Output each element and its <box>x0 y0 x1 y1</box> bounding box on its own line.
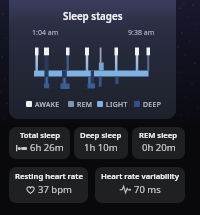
button[interactable]: Deep sleep <box>74 127 128 159</box>
button[interactable]: REM sleep <box>132 127 185 159</box>
staticText: DEEP <box>143 100 162 107</box>
staticText: 37 bpm <box>38 183 72 196</box>
button[interactable]: Resting heart rate <box>9 167 88 203</box>
staticText: LIGHT <box>106 100 128 107</box>
staticText: 0h 20m <box>142 141 176 154</box>
staticText: Total sleep <box>20 130 61 140</box>
button[interactable]: Heart rate variability <box>95 167 185 203</box>
staticText: AWAKE <box>35 100 60 107</box>
staticText: REM sleep <box>139 130 178 140</box>
button[interactable]: Sleep stages <box>9 0 176 119</box>
staticText: Resting heart rate <box>15 171 83 181</box>
staticText: Sleep stages <box>63 10 123 23</box>
staticText: Deep sleep <box>80 130 122 140</box>
staticText: 70 ms <box>134 183 161 196</box>
staticText: 1h 10m <box>84 141 118 154</box>
staticText: 9:38 am <box>128 28 155 38</box>
staticText: 6h 26m <box>30 141 64 154</box>
staticText: Heart rate variability <box>101 171 179 181</box>
staticText: REM <box>77 100 93 107</box>
staticText: 1:04 am <box>32 28 59 38</box>
button[interactable]: Total sleep <box>9 127 70 159</box>
